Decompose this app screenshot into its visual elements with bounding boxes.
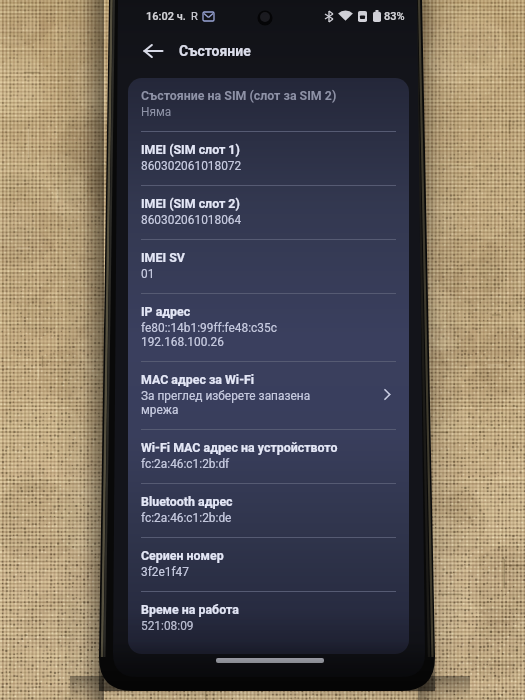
staticText: Сериен номер <box>141 548 224 563</box>
staticText: 01 <box>141 267 155 281</box>
staticText: Състояние <box>179 43 251 59</box>
button[interactable]: Back <box>137 35 169 67</box>
button[interactable]: IMEI (SIM слот 1) <box>141 132 396 185</box>
button[interactable]: Състояние на SIM (слот за SIM 2) <box>141 78 396 131</box>
button[interactable]: IP адрес <box>141 294 396 361</box>
staticText: IMEI SV <box>141 250 185 265</box>
staticText: мрежа <box>141 403 179 417</box>
staticText: MAC адрес за Wi-Fi <box>141 372 255 387</box>
button[interactable]: MAC адрес за Wi-Fi <box>141 362 396 429</box>
staticText: IMEI (SIM слот 1) <box>141 142 240 157</box>
staticText: R <box>191 10 198 23</box>
button[interactable]: IMEI SV <box>141 240 396 293</box>
button[interactable]: Bluetooth адрес <box>141 484 396 537</box>
staticText: 192.168.100.26 <box>141 335 224 349</box>
staticText: IMEI (SIM слот 2) <box>141 196 240 211</box>
staticText: Състояние на SIM (слот за SIM 2) <box>141 88 337 103</box>
staticText: 521:08:09 <box>141 619 194 633</box>
button[interactable]: Време на работа <box>141 592 396 645</box>
staticText: 860302061018064 <box>141 213 242 227</box>
staticText: 16:02 ч. <box>146 10 186 23</box>
staticText: 83% <box>384 10 405 23</box>
staticText: Време на работа <box>141 602 239 617</box>
staticText: IP адрес <box>141 304 191 319</box>
staticText: Bluetooth адрес <box>141 494 233 509</box>
staticText: 3f2e1f47 <box>141 565 189 579</box>
staticText: fe80::14b1:99ff:fe48:c35c <box>141 321 277 335</box>
staticText: fc:2a:46:c1:2b:de <box>141 511 232 525</box>
staticText: За преглед изберете запазена <box>141 389 311 403</box>
staticText: Няма <box>141 105 172 119</box>
staticText: Wi-Fi MAC адрес на устройството <box>141 440 338 455</box>
staticText: 860302061018072 <box>141 159 242 173</box>
button[interactable]: Wi-Fi MAC адрес на устройството <box>141 430 396 483</box>
staticText: fc:2a:46:c1:2b:df <box>141 457 230 471</box>
button[interactable]: Сериен номер <box>141 538 396 591</box>
button[interactable]: IMEI (SIM слот 2) <box>141 186 396 239</box>
